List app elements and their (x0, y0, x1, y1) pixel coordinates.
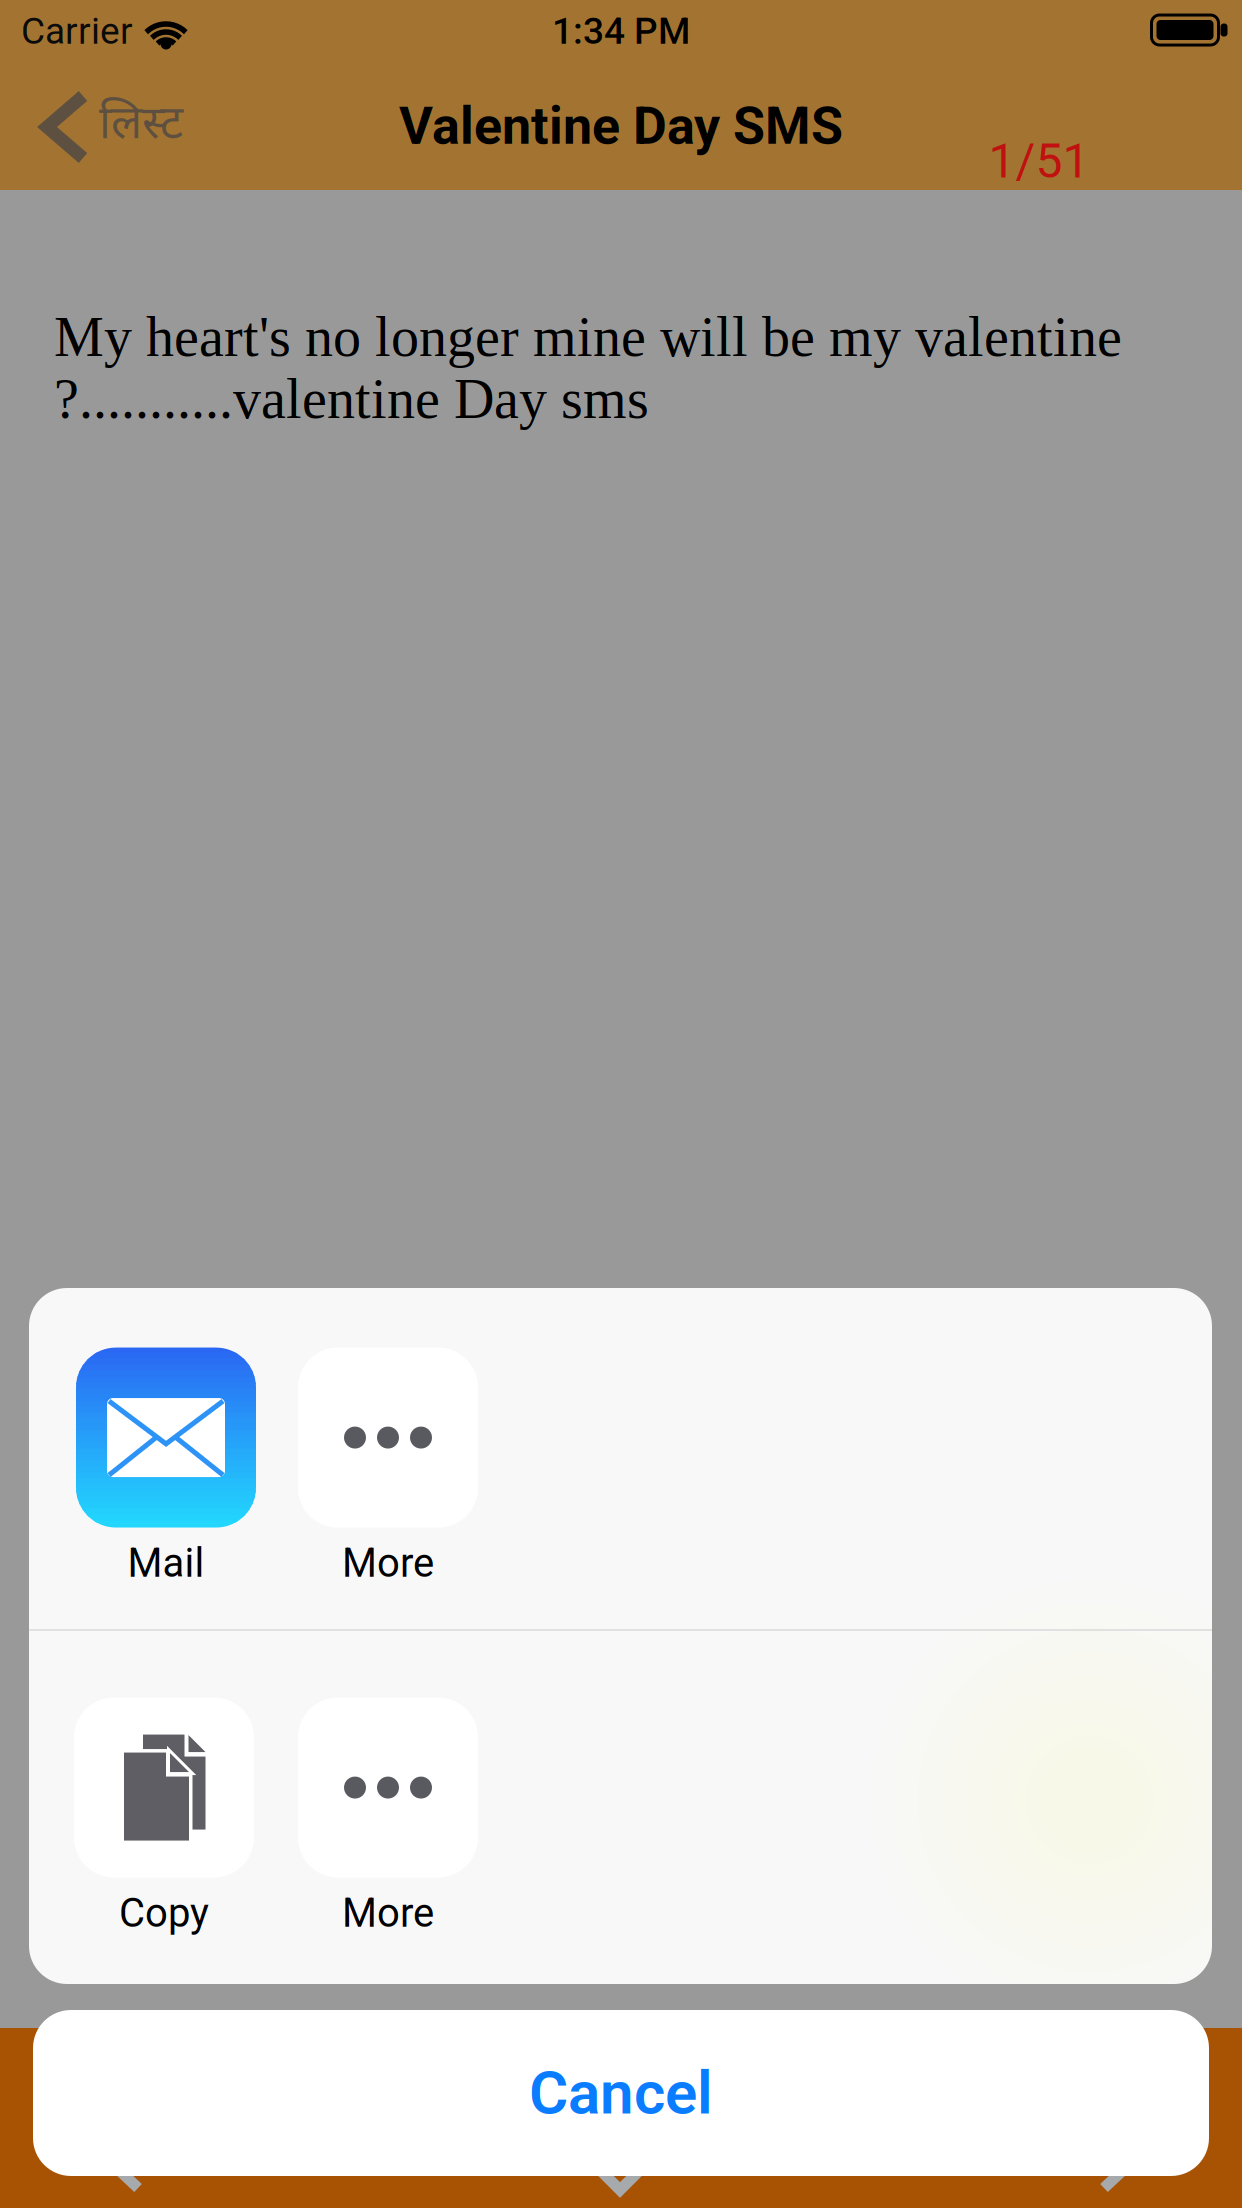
staticText: 1:34 PM (552, 9, 690, 53)
button[interactable]: More (298, 1348, 478, 1586)
staticText: Valentine Day SMS (399, 95, 843, 156)
staticText: लिस्ट (99, 97, 183, 157)
staticText: 1/51 (988, 133, 1089, 189)
button[interactable]: Copy (74, 1698, 254, 1936)
staticText: My heart's no longer mine will be my val… (54, 306, 1122, 430)
staticText: Mail (127, 1540, 204, 1586)
staticText: Carrier (21, 9, 133, 53)
staticText: Cancel (529, 2058, 713, 2128)
button[interactable]: Cancel (33, 2010, 1209, 2176)
button[interactable]: Next (1104, 2124, 1138, 2188)
button[interactable]: More (298, 1698, 478, 1936)
staticText: More (342, 1890, 434, 1936)
staticText: Copy (119, 1890, 209, 1936)
button[interactable]: Share (592, 2162, 648, 2190)
button[interactable]: Mail (76, 1348, 256, 1586)
button[interactable]: Previous (104, 2124, 138, 2188)
button[interactable]: लिस्ट (47, 96, 183, 158)
staticText: More (342, 1540, 434, 1586)
